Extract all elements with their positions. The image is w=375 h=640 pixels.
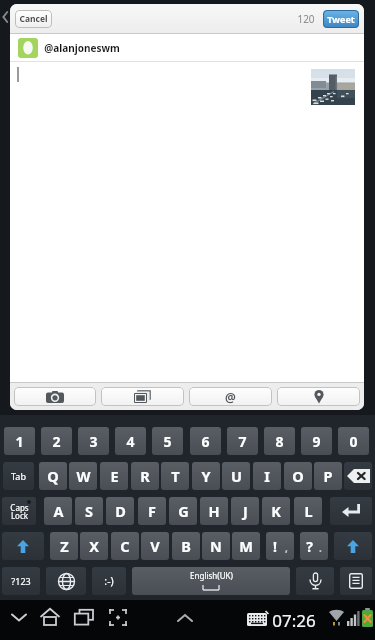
staticText: Tweet [327, 13, 355, 25]
staticText: ? [306, 537, 313, 556]
staticText: 2 [52, 432, 61, 451]
button[interactable]: P [314, 462, 342, 490]
button[interactable]: U [222, 462, 250, 490]
button[interactable] [101, 387, 184, 406]
button[interactable]: Caps Lock [2, 497, 36, 525]
staticText: @alanjoneswm [44, 41, 120, 55]
button[interactable]: I [253, 462, 281, 490]
staticText: . [319, 541, 322, 555]
button[interactable]: C [111, 532, 139, 560]
button[interactable] [277, 387, 360, 406]
button[interactable]: G [169, 497, 197, 525]
staticText: S [85, 501, 93, 521]
button[interactable]: Tweet [323, 10, 359, 28]
button[interactable]: L [294, 497, 322, 525]
button[interactable]: 2 [41, 427, 72, 455]
button[interactable]: V [141, 532, 169, 560]
staticText: P [323, 466, 333, 486]
staticText: B [181, 536, 191, 556]
staticText: 4 [126, 432, 135, 451]
button[interactable]: E [100, 462, 128, 490]
button[interactable] [46, 567, 86, 595]
button[interactable]: A [44, 497, 72, 525]
button[interactable] [38, 606, 62, 630]
button[interactable]: 1 [4, 427, 35, 455]
staticText: H [208, 501, 220, 521]
button[interactable] [296, 567, 334, 595]
button[interactable] [72, 606, 96, 630]
button[interactable]: Tab [3, 462, 34, 490]
button[interactable] [2, 532, 44, 560]
staticText: I [264, 466, 270, 486]
staticText: N [210, 536, 222, 556]
staticText: @ [225, 389, 236, 405]
staticText: F [148, 501, 156, 521]
staticText: , [285, 541, 288, 555]
staticText: J [243, 501, 248, 521]
button[interactable]: Cancel [15, 10, 52, 28]
button[interactable]: 0 [338, 427, 369, 455]
staticText: A [53, 501, 64, 521]
button[interactable] [330, 497, 372, 525]
button[interactable]: F [138, 497, 166, 525]
button[interactable]: S [75, 497, 103, 525]
button[interactable]: B [172, 532, 200, 560]
button[interactable]: O [284, 462, 312, 490]
button[interactable] [334, 532, 372, 560]
staticText: 3 [89, 432, 98, 451]
staticText: Cancel [19, 13, 48, 25]
staticText: O [292, 466, 304, 486]
staticText: Z [60, 536, 69, 556]
button[interactable]: ! [266, 532, 294, 560]
staticText: 0 [349, 432, 358, 451]
button[interactable]: 8 [264, 427, 295, 455]
staticText: V [150, 536, 160, 556]
button[interactable]: Y [192, 462, 220, 490]
button[interactable]: D [106, 497, 134, 525]
staticText: G [178, 501, 189, 521]
button[interactable]: ?123 [2, 567, 40, 595]
button[interactable]: J [231, 497, 259, 525]
button[interactable]: 5 [152, 427, 183, 455]
staticText: X [89, 536, 99, 556]
button[interactable]: R [131, 462, 159, 490]
staticText: L [304, 501, 313, 521]
button[interactable]: H [200, 497, 228, 525]
button[interactable]: :-) [92, 567, 126, 595]
staticText: C [120, 536, 130, 556]
button[interactable] [106, 606, 130, 630]
staticText: 5 [163, 432, 172, 451]
button[interactable] [344, 462, 372, 490]
staticText: 7 [238, 432, 247, 451]
staticText: Caps Lock [10, 502, 29, 521]
button[interactable]: 4 [115, 427, 146, 455]
staticText: D [115, 501, 126, 521]
staticText: W [76, 466, 91, 486]
staticText: 1 [15, 432, 24, 451]
staticText: :-) [104, 574, 114, 588]
button[interactable] [6, 608, 32, 632]
button[interactable] [172, 608, 198, 628]
button[interactable]: 7 [227, 427, 258, 455]
staticText: R [140, 466, 150, 486]
staticText: T [171, 466, 180, 486]
staticText: 6 [201, 432, 210, 451]
button[interactable]: K [262, 497, 290, 525]
staticText: ! [273, 537, 277, 556]
button[interactable]: 9 [301, 427, 332, 455]
button[interactable]: Z [50, 532, 78, 560]
button[interactable]: Q [39, 462, 67, 490]
button[interactable]: W [69, 462, 97, 490]
button[interactable]: @ [189, 387, 272, 406]
button[interactable]: English(UK) [132, 567, 290, 595]
button[interactable]: ? [300, 532, 328, 560]
button[interactable]: M [232, 532, 260, 560]
button[interactable]: X [80, 532, 108, 560]
button[interactable] [14, 387, 96, 406]
button[interactable]: 3 [78, 427, 109, 455]
button[interactable] [340, 567, 372, 595]
button[interactable]: T [161, 462, 189, 490]
staticText: 8 [275, 432, 284, 451]
button[interactable]: N [202, 532, 230, 560]
button[interactable]: 6 [190, 427, 221, 455]
